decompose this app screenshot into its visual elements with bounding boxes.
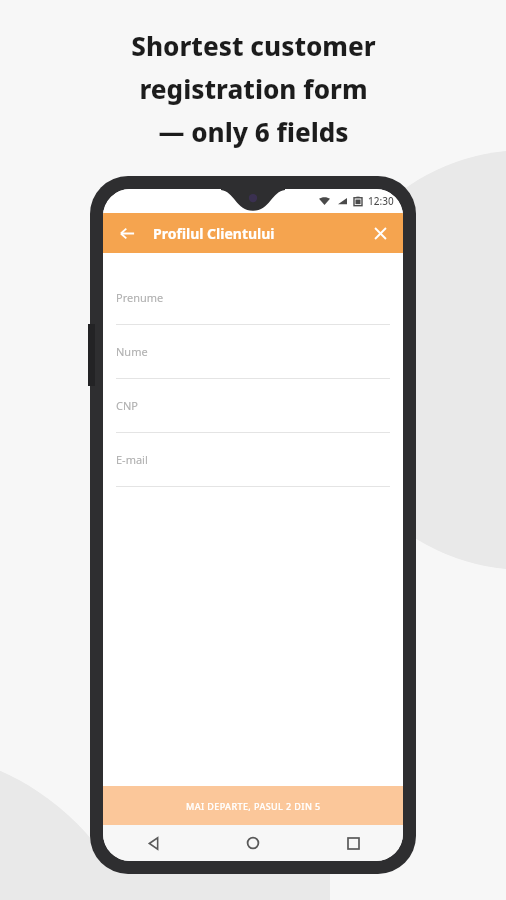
staticText: — only 6 fields [158, 114, 349, 149]
button[interactable]: Prenume [103, 271, 403, 325]
staticText: Nume [116, 344, 148, 359]
staticText: CNP [116, 398, 138, 413]
staticText: Shortest customer [131, 28, 376, 63]
button[interactable]: Home [203, 825, 303, 861]
staticText: E-mail [116, 452, 148, 467]
button[interactable]: CNP [103, 379, 403, 433]
button[interactable]: MAI DEPARTE, PASUL 2 DIN 5 [103, 786, 403, 825]
staticText: registration form [139, 71, 368, 106]
button[interactable]: Recent apps [303, 825, 403, 861]
button[interactable]: Nume [103, 325, 403, 379]
staticText: MAI DEPARTE, PASUL 2 DIN 5 [186, 800, 321, 812]
button[interactable]: E-mail [103, 433, 403, 487]
staticText: Profilul Clientului [153, 224, 275, 243]
staticText: 12:30 [368, 194, 394, 208]
staticText: Prenume [116, 290, 164, 305]
button[interactable]: Back [113, 219, 141, 247]
button[interactable]: Back [103, 825, 203, 861]
button[interactable]: Close [366, 219, 394, 247]
